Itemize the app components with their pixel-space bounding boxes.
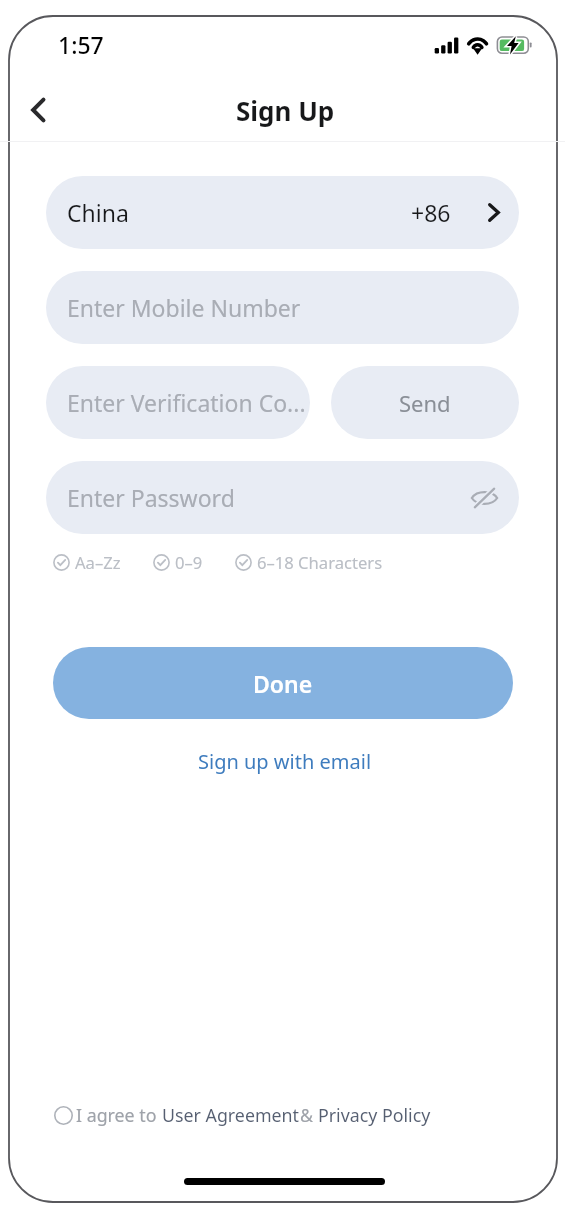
button[interactable]: Back	[13, 84, 65, 136]
button[interactable]: Done	[53, 647, 513, 719]
staticText: Done	[253, 668, 313, 699]
button[interactable]: Enter Verification Co...	[46, 366, 310, 439]
staticText: +86	[411, 197, 451, 228]
staticText: Send	[399, 388, 451, 418]
staticText: 0–9	[175, 551, 203, 574]
staticText: I agree to	[76, 1103, 162, 1127]
button[interactable]: Show password	[465, 479, 503, 517]
button[interactable]: Sign up with email	[190, 744, 380, 779]
staticText: Aa–Zz	[75, 551, 121, 574]
staticText: &	[300, 1103, 318, 1127]
button[interactable]: Enter Password	[46, 461, 519, 534]
staticText: Enter Mobile Number	[67, 292, 301, 323]
button[interactable]: China	[46, 176, 519, 249]
staticText: China	[67, 197, 129, 228]
staticText: Enter Password	[67, 482, 235, 513]
button[interactable]: Privacy Policy	[318, 1103, 431, 1127]
button[interactable]: User Agreement	[162, 1103, 300, 1127]
staticText: 1:57	[58, 29, 104, 60]
button[interactable]: Send	[331, 366, 519, 439]
staticText: Enter Verification Co...	[67, 387, 310, 418]
button[interactable]: Enter Mobile Number	[46, 271, 519, 344]
button[interactable]: Agree to terms	[54, 1106, 73, 1125]
staticText: Sign Up	[236, 93, 335, 128]
staticText: 6–18 Characters	[257, 551, 383, 574]
